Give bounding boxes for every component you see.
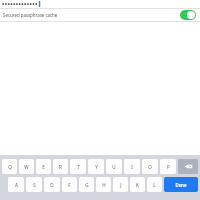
button[interactable]: U	[106, 159, 122, 174]
staticText: G	[85, 182, 89, 188]
button[interactable]: Secured passphrase cache toggle	[180, 10, 196, 20]
button[interactable]: Y	[88, 159, 104, 174]
staticText: T	[77, 164, 80, 170]
button[interactable]: F	[62, 177, 77, 192]
staticText: F	[68, 182, 71, 188]
staticText: E	[42, 164, 45, 170]
button[interactable]: H	[96, 177, 111, 192]
staticText: Secured passphrase cache	[3, 12, 58, 18]
staticText: W	[24, 164, 29, 170]
button[interactable]: Q	[2, 159, 17, 174]
button[interactable]: L	[147, 177, 162, 192]
button[interactable]: S	[26, 177, 42, 192]
staticText: U	[112, 164, 116, 170]
button[interactable]: W	[19, 159, 34, 174]
staticText: L	[153, 182, 156, 188]
button[interactable]: J	[113, 177, 128, 192]
button[interactable]: R	[53, 159, 68, 174]
button[interactable]: A	[8, 177, 24, 192]
button[interactable]: Secured passphrase cache	[0, 9, 200, 21]
button[interactable]: E	[36, 159, 51, 174]
staticText: Done	[175, 182, 187, 188]
button[interactable]: G	[79, 177, 94, 192]
staticText: J	[120, 182, 122, 188]
staticText: P	[167, 164, 170, 170]
staticText: I	[131, 164, 133, 170]
staticText: R	[59, 164, 62, 170]
staticText: A	[15, 182, 18, 188]
staticText: H	[102, 182, 106, 188]
button[interactable]	[0, 0, 200, 8]
staticText: Q	[8, 164, 12, 170]
button[interactable]: Done	[164, 177, 198, 192]
staticText: K	[136, 182, 139, 188]
button[interactable]: O	[142, 159, 158, 174]
staticText: Y	[95, 164, 98, 170]
staticText: O	[148, 164, 152, 170]
button[interactable]: K	[130, 177, 145, 192]
button[interactable]: T	[70, 159, 86, 174]
button[interactable]: I	[124, 159, 140, 174]
staticText: D	[50, 182, 54, 188]
button[interactable]: Backspace	[178, 159, 198, 174]
staticText: S	[33, 182, 36, 188]
button[interactable]: P	[160, 159, 176, 174]
button[interactable]: D	[44, 177, 60, 192]
